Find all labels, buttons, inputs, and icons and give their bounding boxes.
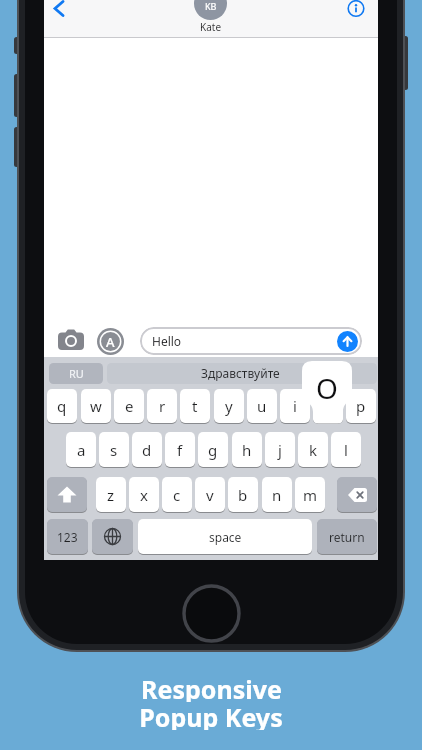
button[interactable]: d <box>132 432 162 467</box>
staticText: i <box>293 396 297 416</box>
button[interactable] <box>58 329 85 352</box>
staticText: l <box>344 440 348 460</box>
button[interactable]: h <box>232 432 262 467</box>
staticText: A <box>106 333 115 351</box>
button[interactable]: y <box>214 389 244 423</box>
button[interactable]: return <box>317 519 377 554</box>
staticText: space <box>209 529 242 545</box>
staticText: u <box>257 396 267 416</box>
staticText: o <box>323 396 333 416</box>
button[interactable]: b <box>228 477 258 512</box>
button[interactable]: Hello <box>140 327 362 355</box>
button[interactable]: w <box>81 389 111 423</box>
button[interactable] <box>337 331 358 352</box>
staticText: n <box>272 485 282 505</box>
staticText: v <box>206 485 214 505</box>
staticText: p <box>356 396 366 416</box>
button[interactable]: A <box>97 328 124 355</box>
staticText: k <box>309 440 318 460</box>
staticText: j <box>278 440 282 460</box>
button[interactable] <box>47 477 87 512</box>
staticText: c <box>173 485 181 505</box>
staticText: s <box>110 440 118 460</box>
staticText: Responsive <box>141 672 282 702</box>
staticText: f <box>177 440 183 460</box>
button[interactable]: p <box>346 389 376 423</box>
button[interactable]: n <box>262 477 292 512</box>
button[interactable]: x <box>129 477 159 512</box>
button[interactable]: z <box>96 477 126 512</box>
staticText: g <box>208 440 218 460</box>
staticText: t <box>192 396 198 416</box>
button[interactable] <box>50 0 70 20</box>
staticText: w <box>90 396 102 416</box>
staticText: z <box>107 485 115 505</box>
staticText: m <box>303 485 318 505</box>
button[interactable]: k <box>298 432 328 467</box>
staticText: Popup Keys <box>139 700 283 730</box>
button[interactable]: o <box>313 389 343 423</box>
staticText: return <box>329 529 365 545</box>
staticText: 123 <box>57 529 78 545</box>
button[interactable]: u <box>247 389 277 423</box>
button[interactable]: space <box>138 519 312 554</box>
button[interactable]: f <box>165 432 195 467</box>
staticText: Hello <box>152 333 182 349</box>
staticText: O <box>316 369 338 401</box>
staticText: x <box>140 485 148 505</box>
button[interactable]: s <box>99 432 129 467</box>
staticText: h <box>242 440 252 460</box>
staticText: e <box>125 396 134 416</box>
staticText: q <box>57 396 67 416</box>
button[interactable]: m <box>295 477 325 512</box>
staticText: b <box>238 485 248 505</box>
button[interactable]: i <box>280 389 310 423</box>
button[interactable] <box>92 519 133 554</box>
staticText: r <box>159 396 166 416</box>
button[interactable] <box>337 477 377 512</box>
button[interactable]: t <box>180 389 210 423</box>
button[interactable]: 123 <box>47 519 88 554</box>
staticText: Kate <box>200 20 222 34</box>
button[interactable] <box>107 363 377 384</box>
staticText: d <box>142 440 152 460</box>
button[interactable]: Здравствуйте <box>185 363 295 382</box>
staticText: a <box>77 440 86 460</box>
button[interactable]: RU <box>49 363 103 384</box>
button[interactable]: c <box>162 477 192 512</box>
button[interactable]: v <box>195 477 225 512</box>
staticText: RU <box>69 366 84 381</box>
button[interactable] <box>347 0 365 18</box>
button[interactable]: e <box>114 389 144 423</box>
staticText: y <box>225 396 233 416</box>
staticText: Здравствуйте <box>201 365 280 381</box>
button[interactable]: a <box>66 432 96 467</box>
button[interactable]: q <box>47 389 77 423</box>
button[interactable]: r <box>147 389 177 423</box>
button[interactable]: g <box>198 432 228 467</box>
button[interactable]: l <box>331 432 361 467</box>
button[interactable]: j <box>265 432 295 467</box>
staticText: KB <box>205 0 217 12</box>
